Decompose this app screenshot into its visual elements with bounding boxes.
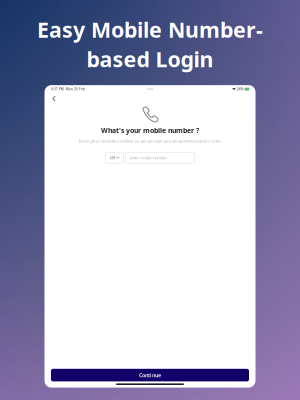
staticText: Enter mobile number bbox=[130, 155, 167, 160]
staticText: 24% bbox=[237, 87, 244, 91]
staticText: Easy Mobile Number- bbox=[37, 15, 263, 44]
button[interactable]: Back bbox=[47, 93, 60, 104]
button[interactable]: Continue bbox=[51, 369, 249, 381]
staticText: What's your mobile number ? bbox=[101, 126, 199, 135]
staticText: Enter your mobile number so we can text … bbox=[78, 138, 221, 144]
button[interactable]: Country code, plus 91 bbox=[105, 152, 123, 163]
staticText: 4:31 PM Mon 20 Feb bbox=[51, 87, 85, 91]
button[interactable]: Enter mobile number bbox=[126, 152, 195, 163]
staticText: +91 bbox=[109, 155, 115, 160]
staticText: Continue bbox=[139, 371, 161, 379]
staticText: based Login bbox=[86, 45, 213, 74]
